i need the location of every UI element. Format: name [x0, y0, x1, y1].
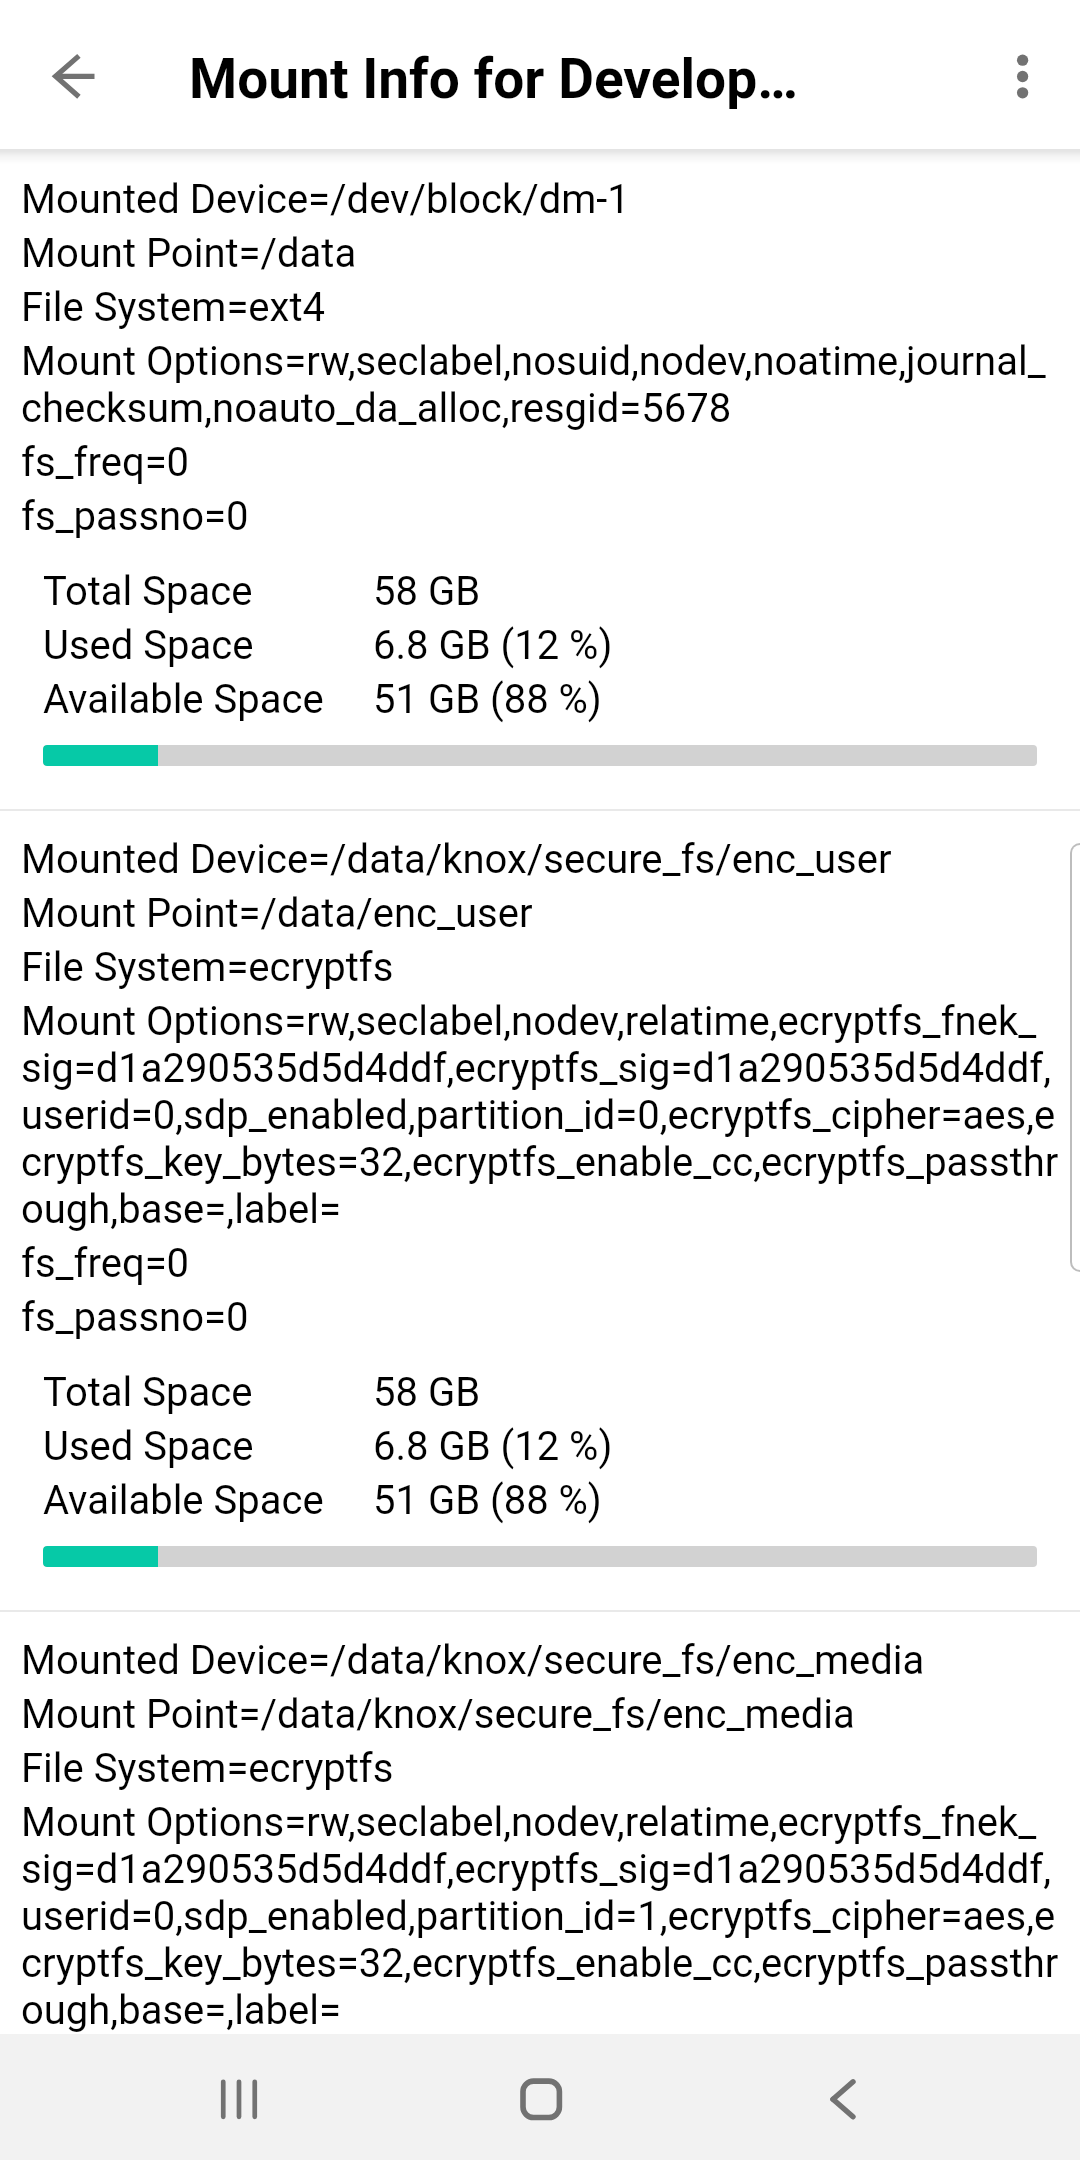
button[interactable]: Navigate up: [30, 32, 118, 120]
staticText: Mounted Device=/dev/block/dm-1: [21, 176, 630, 223]
staticText: fs_freq=0: [21, 439, 190, 486]
staticText: Mount Options=rw,seclabel,nosuid,nodev,n…: [21, 338, 1046, 432]
staticText: File System=ext4: [21, 284, 325, 331]
button[interactable]: More options: [978, 32, 1066, 120]
staticText: Total Space: [43, 2062, 253, 2109]
staticText: 6.8 GB (12 %): [373, 622, 613, 669]
staticText: Mounted Device=/data/knox/secure_fs/enc_…: [21, 836, 892, 883]
staticText: fs_passno=0: [21, 493, 249, 540]
staticText: Mount Point=/data: [21, 230, 357, 277]
button[interactable]: Recent apps: [179, 2057, 299, 2160]
staticText: Mount Options=rw,seclabel,nodev,relatime…: [21, 1799, 1059, 2034]
staticText: Used Space: [43, 622, 254, 669]
staticText: Available Space: [43, 676, 324, 723]
staticText: Used Space: [43, 1423, 254, 1470]
button[interactable]: Back: [783, 2057, 903, 2160]
staticText: File System=ecryptfs: [21, 944, 394, 991]
staticText: 6.8 GB (12 %): [373, 1423, 613, 1470]
staticText: Used Space: [43, 2116, 254, 2160]
staticText: fs_freq=0: [21, 1240, 190, 1287]
staticText: 51 GB (88 %): [373, 676, 602, 723]
staticText: Total Space: [43, 568, 253, 615]
button[interactable]: Home: [481, 2057, 601, 2160]
staticText: Mounted Device=/data/knox/secure_fs/enc_…: [21, 1637, 925, 1684]
staticText: Mount Options=rw,seclabel,nodev,relatime…: [21, 998, 1059, 1233]
staticText: 58 GB: [373, 568, 481, 615]
staticText: Mount Point=/data/knox/secure_fs/enc_med…: [21, 1691, 855, 1738]
staticText: 58 GB: [373, 1369, 481, 1416]
staticText: File System=ecryptfs: [21, 1745, 394, 1792]
staticText: 6.8 GB (12 %): [373, 2116, 613, 2160]
staticText: Mount Point=/data/enc_user: [21, 890, 533, 937]
staticText: Mount Info for Develop…: [189, 47, 798, 111]
staticText: fs_passno=0: [21, 1294, 249, 1341]
staticText: 51 GB (88 %): [373, 1477, 602, 1524]
staticText: Available Space: [43, 1477, 324, 1524]
staticText: Total Space: [43, 1369, 253, 1416]
